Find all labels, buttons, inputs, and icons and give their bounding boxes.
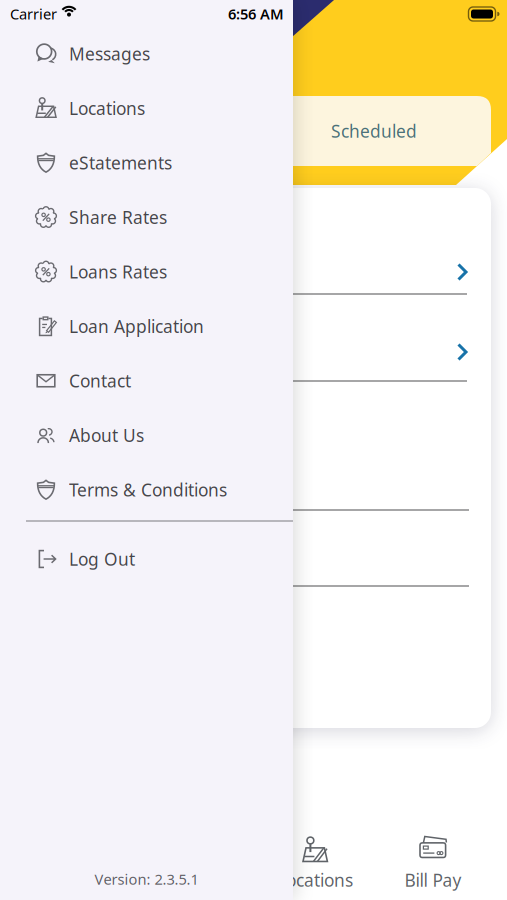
staticText: eStatements: [69, 151, 172, 174]
button[interactable]: Messages: [0, 26, 293, 81]
button[interactable]: Log Out: [0, 532, 293, 586]
button[interactable]: Loans Rates: [0, 244, 293, 299]
button[interactable]: Loan Application: [0, 299, 293, 353]
staticText: Scheduled: [331, 119, 417, 142]
button[interactable]: Bill Pay: [383, 832, 483, 894]
button[interactable]: Scheduled: [294, 104, 454, 158]
button[interactable]: Locations: [0, 81, 293, 135]
button[interactable]: Select account: [293, 244, 467, 300]
button[interactable]: Locations: [265, 832, 365, 894]
staticText: About Us: [69, 424, 144, 447]
staticText: Version: 2.3.5.1: [94, 869, 198, 889]
button[interactable]: Share Rates: [0, 190, 293, 244]
staticText: Log Out: [69, 547, 135, 570]
button[interactable]: Contact: [0, 353, 293, 408]
staticText: Carrier: [10, 4, 57, 23]
staticText: Bill Pay: [404, 868, 461, 891]
button[interactable]: About Us: [0, 408, 293, 462]
button[interactable]: eStatements: [0, 135, 293, 190]
staticText: Loans Rates: [69, 260, 167, 283]
staticText: Loan Application: [69, 315, 204, 338]
staticText: Messages: [69, 42, 150, 65]
staticText: Locations: [69, 97, 145, 120]
staticText: 6:56 AM: [228, 4, 284, 23]
staticText: Contact: [69, 369, 131, 392]
staticText: Locations: [277, 868, 353, 891]
staticText: Terms & Conditions: [69, 478, 227, 501]
button[interactable]: Terms & Conditions: [0, 462, 293, 517]
staticText: Share Rates: [69, 206, 167, 229]
button[interactable]: Select payee: [293, 324, 467, 380]
